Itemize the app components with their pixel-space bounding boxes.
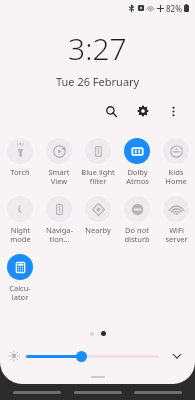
staticText: 82% [166, 3, 182, 14]
button[interactable]: Do not disturb [118, 195, 156, 245]
button[interactable]: Torch [1, 137, 39, 178]
button[interactable]: Naviga- tion... [40, 195, 78, 245]
button[interactable]: Dolby Atmos [118, 137, 156, 187]
button[interactable]: Kids Home [157, 137, 195, 187]
button[interactable]: Blue light filter [79, 137, 117, 187]
staticText: Nearby [85, 225, 111, 235]
button[interactable] [26, 346, 159, 366]
button[interactable]: WiFi server [157, 195, 195, 245]
staticText: 3:27 [68, 28, 127, 69]
button[interactable]: Search [99, 99, 123, 123]
button[interactable]: Nearby [79, 195, 117, 236]
staticText: Dolby Atmos [126, 167, 149, 186]
staticText: Night mode [10, 225, 31, 244]
staticText: Naviga- tion... [46, 225, 73, 244]
staticText: Tue 26 February [56, 74, 140, 89]
staticText: WiFi server [165, 225, 188, 244]
button[interactable]: Settings [131, 99, 155, 123]
staticText: Smart View [48, 167, 70, 186]
button[interactable]: Smart View [40, 137, 78, 187]
button[interactable]: More options [161, 99, 185, 123]
staticText: Kids Home [165, 167, 187, 186]
staticText: Blue light filter [81, 167, 115, 186]
button[interactable]: Night mode [1, 195, 39, 245]
staticText: Do not disturb [124, 225, 150, 244]
staticText: Torch [10, 167, 30, 177]
staticText: Calcu- lator [9, 283, 31, 302]
button[interactable]: Expand brightness settings [167, 346, 187, 366]
button[interactable]: Calcu- lator [1, 253, 39, 303]
